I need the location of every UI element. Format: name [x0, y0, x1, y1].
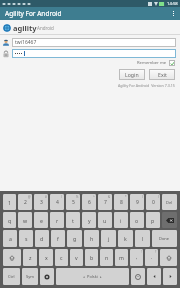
button[interactable]: Del — [162, 194, 177, 210]
staticText: r — [56, 217, 59, 224]
staticText: n — [105, 254, 109, 261]
staticText: j — [108, 235, 110, 242]
button[interactable]: Done — [152, 230, 177, 247]
staticText: f — [57, 235, 59, 242]
button[interactable]: Ctrl — [3, 268, 20, 285]
button[interactable]: 0 — [146, 194, 160, 210]
button[interactable]: 8 — [114, 194, 128, 210]
button[interactable]: e — [34, 212, 48, 228]
staticText: Polski — [87, 274, 98, 279]
staticText: , — [136, 254, 138, 261]
button[interactable]: k — [118, 230, 133, 247]
button[interactable]: Right — [163, 268, 177, 285]
staticText: v — [75, 254, 78, 261]
staticText: Agility For Android Version 7.3.15 — [118, 83, 175, 88]
staticText: 0 — [152, 199, 155, 206]
staticText: 5 — [72, 199, 75, 206]
button[interactable]: a — [3, 230, 17, 247]
staticText: g — [73, 235, 77, 242]
staticText: k — [124, 235, 127, 242]
staticText: m — [119, 254, 124, 261]
button[interactable]: Keyboard settings — [40, 268, 54, 285]
button[interactable]: f — [51, 230, 65, 247]
button[interactable]: 7 — [98, 194, 112, 210]
button[interactable]: Left — [147, 268, 161, 285]
staticText: Android — [37, 25, 54, 31]
staticText: e — [40, 217, 43, 224]
button[interactable]: x — [39, 249, 53, 266]
staticText: Login — [125, 71, 139, 78]
staticText: Remember me — [137, 60, 167, 66]
button[interactable]: j — [101, 230, 116, 247]
staticText: 14:58 — [167, 1, 178, 7]
staticText: ▸ — [100, 275, 102, 279]
button[interactable]: z — [23, 249, 37, 266]
button[interactable]: v — [70, 249, 83, 266]
button[interactable]: n — [100, 249, 113, 266]
button[interactable]: ◂ — [56, 268, 129, 285]
button[interactable]: h — [84, 230, 99, 247]
staticText: c — [60, 254, 63, 261]
staticText: # — [45, 195, 47, 199]
staticText: h — [90, 235, 94, 242]
staticText: @ — [28, 195, 31, 199]
staticText: ? — [155, 250, 157, 254]
staticText: Del — [166, 200, 173, 205]
staticText: z — [29, 254, 32, 261]
button[interactable]: Backspace — [162, 212, 177, 228]
staticText: ) — [158, 195, 159, 199]
staticText: % — [76, 195, 79, 199]
button[interactable]: d — [35, 230, 49, 247]
button[interactable] — [12, 49, 176, 58]
button[interactable]: c — [55, 249, 68, 266]
button[interactable]: r — [50, 212, 64, 228]
button[interactable]: b — [85, 249, 98, 266]
button[interactable]: i — [114, 212, 128, 228]
button[interactable]: g — [67, 230, 82, 247]
button[interactable]: s — [19, 230, 33, 247]
staticText: o — [135, 217, 139, 224]
button[interactable]: p — [146, 212, 160, 228]
button[interactable]: 9 — [130, 194, 144, 210]
button[interactable]: m — [115, 249, 128, 266]
button[interactable]: Emoji — [131, 268, 145, 285]
button[interactable]: 1 — [3, 194, 16, 210]
button[interactable]: Login — [119, 69, 145, 80]
button[interactable]: w — [18, 212, 32, 228]
staticText: p — [151, 217, 155, 224]
button[interactable]: 5 — [66, 194, 80, 210]
button[interactable]: q — [3, 212, 16, 228]
button[interactable]: 2 — [18, 194, 32, 210]
button[interactable]: 4 — [50, 194, 64, 210]
staticText: 2 — [24, 199, 27, 206]
staticText: q — [8, 217, 12, 224]
button[interactable]: u — [98, 212, 112, 228]
button[interactable]: Sym — [22, 268, 38, 285]
staticText: t — [72, 217, 74, 224]
button[interactable]: twi16467 — [12, 38, 176, 47]
button[interactable]: . — [145, 249, 158, 266]
button[interactable]: Exit — [149, 69, 175, 80]
button[interactable]: t — [66, 212, 80, 228]
button[interactable]: More options — [169, 7, 177, 20]
staticText: 1 — [8, 199, 11, 206]
button[interactable]: Shift — [160, 249, 177, 266]
button[interactable]: 3 — [34, 194, 48, 210]
staticText: x — [45, 254, 48, 261]
button[interactable]: y — [82, 212, 96, 228]
staticText: twi16467 — [15, 39, 37, 46]
staticText: Ctrl — [8, 274, 15, 279]
button[interactable]: Shift — [3, 249, 21, 266]
staticText: d — [40, 235, 44, 242]
button[interactable]: l — [135, 230, 150, 247]
staticText: 4 — [56, 199, 59, 206]
button[interactable]: o — [130, 212, 144, 228]
staticText: ( — [142, 195, 143, 199]
button[interactable]: 6 — [82, 194, 96, 210]
staticText: b — [90, 254, 94, 261]
staticText: i — [120, 217, 122, 224]
staticText: ! — [141, 250, 142, 254]
staticText: a — [9, 235, 12, 242]
button[interactable]: Remember me — [137, 60, 175, 66]
button[interactable]: , — [130, 249, 143, 266]
